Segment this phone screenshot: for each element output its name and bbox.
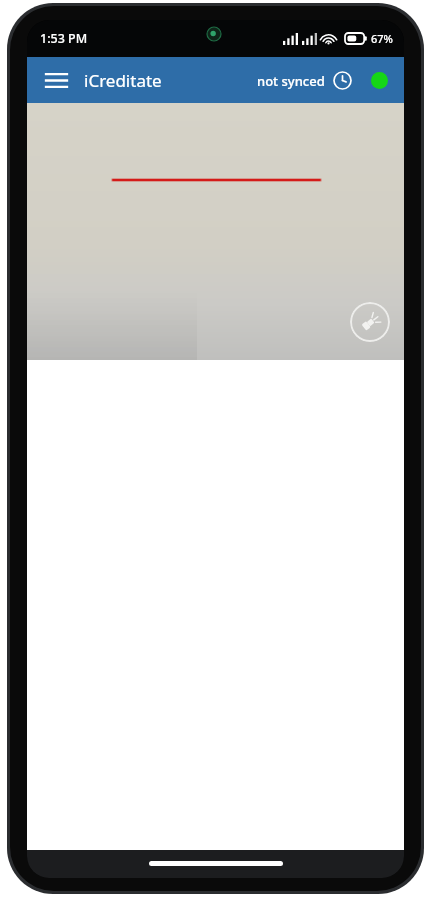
button[interactable]: Home gesture handle bbox=[149, 861, 283, 866]
button[interactable]: Connection status bbox=[366, 67, 392, 93]
button[interactable]: Open navigation menu bbox=[39, 63, 73, 97]
staticText: 67% bbox=[371, 31, 393, 46]
staticText: not synced bbox=[257, 72, 325, 90]
staticText: iCreditate bbox=[84, 69, 162, 92]
button[interactable]: not synced bbox=[253, 67, 356, 94]
button[interactable]: Toggle flashlight bbox=[350, 302, 390, 342]
staticText: 1:53 PM bbox=[40, 30, 88, 47]
